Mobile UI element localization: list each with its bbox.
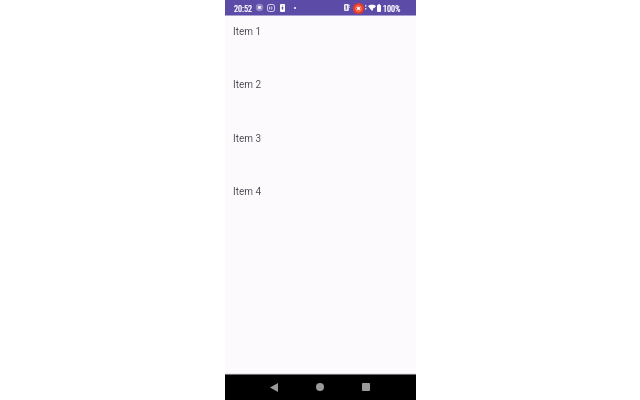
button[interactable]: Back: [259, 375, 289, 400]
button[interactable]: Item 2: [225, 79, 416, 133]
staticText: Item 1: [233, 26, 262, 38]
staticText: Item 4: [233, 186, 262, 198]
staticText: Item 2: [233, 79, 262, 91]
staticText: 100%: [383, 4, 401, 14]
button[interactable]: Item 4: [225, 186, 416, 240]
button[interactable]: Item 1: [225, 26, 416, 80]
button[interactable]: Item 3: [225, 133, 416, 187]
button[interactable]: Recent apps: [351, 374, 381, 399]
button[interactable]: Home: [305, 374, 335, 399]
staticText: 20:52: [234, 4, 253, 14]
staticText: Item 3: [233, 133, 262, 145]
